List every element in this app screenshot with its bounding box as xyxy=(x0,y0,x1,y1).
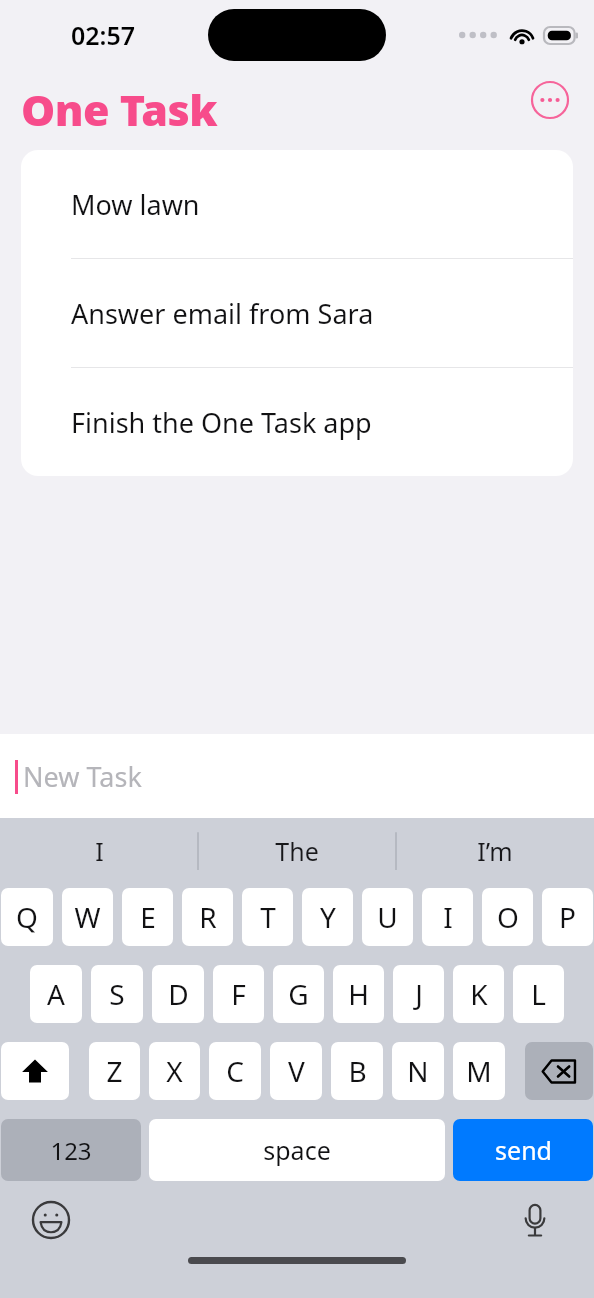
button[interactable]: Shift xyxy=(1,1042,69,1100)
staticText: send xyxy=(495,1133,552,1167)
button[interactable]: A xyxy=(30,965,82,1023)
button[interactable]: I’m xyxy=(396,818,594,883)
button[interactable]: 123 xyxy=(1,1119,141,1181)
staticText: 123 xyxy=(50,1134,92,1167)
staticText: S xyxy=(109,975,125,1013)
button[interactable]: W xyxy=(62,888,113,946)
staticText: D xyxy=(168,975,189,1013)
button[interactable]: I xyxy=(422,888,473,946)
staticText: U xyxy=(377,898,398,936)
button[interactable]: M xyxy=(453,1042,505,1100)
staticText: X xyxy=(166,1052,183,1090)
staticText: B xyxy=(348,1052,367,1090)
staticText: G xyxy=(288,975,309,1013)
staticText: H xyxy=(348,975,369,1013)
staticText: M xyxy=(466,1052,492,1090)
button[interactable]: New Task xyxy=(0,734,594,818)
button[interactable]: Z xyxy=(89,1042,140,1100)
staticText: I xyxy=(95,834,104,868)
button[interactable]: E xyxy=(122,888,173,946)
button[interactable]: K xyxy=(453,965,504,1023)
button[interactable]: The xyxy=(198,818,396,883)
button[interactable]: F xyxy=(213,965,264,1023)
button[interactable]: Mow lawn xyxy=(21,150,573,258)
button[interactable]: S xyxy=(91,965,143,1023)
button[interactable]: Finish the One Task app xyxy=(21,368,573,476)
button[interactable]: T xyxy=(242,888,293,946)
staticText: Z xyxy=(106,1052,123,1090)
button[interactable]: U xyxy=(362,888,413,946)
button[interactable]: C xyxy=(209,1042,261,1100)
button[interactable]: More options xyxy=(530,80,570,120)
button[interactable]: R xyxy=(182,888,233,946)
button[interactable]: V xyxy=(270,1042,322,1100)
button[interactable]: D xyxy=(152,965,204,1023)
button[interactable]: X xyxy=(149,1042,200,1100)
button[interactable]: Delete xyxy=(525,1042,593,1100)
button[interactable]: H xyxy=(333,965,384,1023)
button[interactable]: Emoji xyxy=(28,1197,74,1243)
button[interactable]: Dictation xyxy=(512,1197,558,1243)
staticText: 02:57 xyxy=(71,18,136,52)
staticText: A xyxy=(47,975,65,1013)
staticText: P xyxy=(559,898,576,936)
staticText: T xyxy=(260,898,276,936)
staticText: The xyxy=(275,834,319,868)
button[interactable]: Q xyxy=(1,888,53,946)
button[interactable]: J xyxy=(393,965,444,1023)
button[interactable]: N xyxy=(392,1042,444,1100)
button[interactable]: L xyxy=(513,965,564,1023)
button[interactable]: space xyxy=(149,1119,445,1181)
staticText: E xyxy=(140,898,156,936)
staticText: Q xyxy=(16,898,38,936)
staticText: Finish the One Task app xyxy=(71,404,372,441)
staticText: K xyxy=(470,975,488,1013)
staticText: C xyxy=(226,1052,244,1090)
button[interactable]: G xyxy=(273,965,324,1023)
staticText: I’m xyxy=(477,834,513,868)
staticText: J xyxy=(415,975,423,1013)
staticText: New Task xyxy=(23,758,142,795)
button[interactable]: send xyxy=(453,1119,593,1181)
staticText: N xyxy=(407,1052,429,1090)
button[interactable]: Y xyxy=(302,888,353,946)
button[interactable]: I xyxy=(0,818,198,883)
button[interactable]: O xyxy=(482,888,533,946)
button[interactable]: P xyxy=(542,888,593,946)
staticText: O xyxy=(497,898,519,936)
staticText: Answer email from Sara xyxy=(71,295,374,332)
staticText: W xyxy=(74,898,101,936)
staticText: Mow lawn xyxy=(71,186,200,223)
staticText: Y xyxy=(320,898,336,936)
staticText: One Task xyxy=(21,80,218,139)
staticText: V xyxy=(288,1052,305,1090)
staticText: L xyxy=(531,975,546,1013)
staticText: I xyxy=(443,898,453,936)
staticText: space xyxy=(263,1133,331,1167)
button[interactable]: Answer email from Sara xyxy=(21,259,573,367)
staticText: R xyxy=(199,898,217,936)
button[interactable]: B xyxy=(331,1042,383,1100)
staticText: F xyxy=(231,975,246,1013)
